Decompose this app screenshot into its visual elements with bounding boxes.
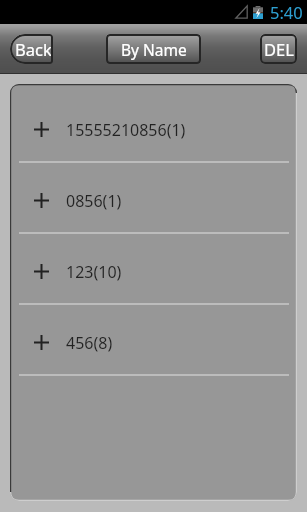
staticText: 5:40 bbox=[270, 1, 303, 23]
button[interactable]: DEL bbox=[260, 34, 297, 64]
other: Expand bbox=[34, 193, 49, 208]
button[interactable]: Back bbox=[10, 34, 53, 64]
button[interactable]: Expand bbox=[10, 163, 297, 232]
staticText: Back bbox=[15, 38, 52, 60]
button[interactable]: Expand bbox=[10, 92, 297, 161]
button[interactable]: By Name bbox=[106, 34, 201, 64]
other: Expand bbox=[34, 335, 49, 350]
staticText: 0856(1) bbox=[66, 190, 122, 212]
other: Expand bbox=[34, 122, 49, 137]
staticText: 123(10) bbox=[66, 261, 122, 283]
button[interactable]: Expand bbox=[10, 305, 297, 374]
other: Expand bbox=[34, 264, 49, 279]
staticText: DEL bbox=[264, 38, 294, 60]
staticText: By Name bbox=[121, 39, 187, 60]
staticText: 15555210856(1) bbox=[66, 119, 186, 141]
button[interactable]: Expand bbox=[10, 234, 297, 303]
staticText: 456(8) bbox=[66, 332, 113, 354]
